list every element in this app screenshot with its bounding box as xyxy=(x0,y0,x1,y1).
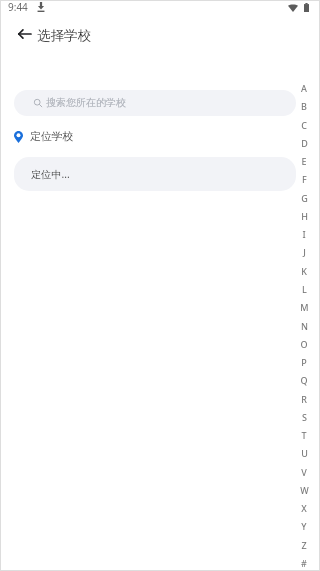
staticText: U xyxy=(301,447,308,459)
button[interactable]: H xyxy=(297,207,311,225)
button[interactable]: 定位中... xyxy=(14,157,296,191)
button[interactable]: Q xyxy=(297,371,311,389)
staticText: N xyxy=(301,320,308,332)
button[interactable]: G xyxy=(297,189,311,207)
button[interactable]: C xyxy=(297,116,311,134)
staticText: 定位中... xyxy=(31,167,70,181)
button[interactable]: Back xyxy=(16,26,32,42)
button[interactable]: O xyxy=(297,335,311,353)
button[interactable]: I xyxy=(297,225,311,243)
staticText: H xyxy=(301,210,308,222)
button[interactable]: E xyxy=(297,152,311,170)
button[interactable]: # xyxy=(297,554,311,571)
button[interactable]: B xyxy=(297,97,311,115)
staticText: D xyxy=(301,137,308,149)
staticText: S xyxy=(302,411,307,423)
staticText: L xyxy=(302,283,307,295)
staticText: I xyxy=(302,228,306,240)
button[interactable]: T xyxy=(297,426,311,444)
button[interactable]: M xyxy=(297,298,311,316)
staticText: # xyxy=(301,557,307,569)
button[interactable]: F xyxy=(297,170,311,188)
button[interactable]: D xyxy=(297,134,311,152)
staticText: C xyxy=(301,119,307,131)
button[interactable]: J xyxy=(297,243,311,261)
button[interactable]: L xyxy=(297,280,311,298)
staticText: P xyxy=(301,356,307,368)
staticText: E xyxy=(301,155,307,167)
staticText: V xyxy=(301,466,307,478)
button[interactable]: N xyxy=(297,317,311,335)
staticText: 9:44 xyxy=(8,0,28,14)
staticText: 搜索您所在的学校 xyxy=(46,96,126,109)
button[interactable]: W xyxy=(297,481,311,499)
staticText: W xyxy=(300,484,309,496)
button[interactable]: V xyxy=(297,463,311,481)
staticText: O xyxy=(300,338,308,350)
staticText: K xyxy=(301,265,307,277)
staticText: F xyxy=(302,173,307,185)
button[interactable]: Y xyxy=(297,517,311,535)
staticText: J xyxy=(303,246,306,258)
staticText: A xyxy=(301,82,307,94)
button[interactable]: Z xyxy=(297,536,311,554)
staticText: G xyxy=(301,192,308,204)
staticText: 选择学校 xyxy=(37,27,91,44)
staticText: Z xyxy=(301,539,307,551)
staticText: 定位学校 xyxy=(30,130,74,143)
button[interactable]: K xyxy=(297,262,311,280)
button[interactable]: U xyxy=(297,444,311,462)
button[interactable]: 搜索您所在的学校 xyxy=(14,90,296,116)
button[interactable]: X xyxy=(297,499,311,517)
staticText: Q xyxy=(300,374,308,386)
staticText: B xyxy=(301,100,307,112)
button[interactable]: A xyxy=(297,79,311,97)
staticText: X xyxy=(301,502,307,514)
button[interactable]: S xyxy=(297,408,311,426)
button[interactable]: P xyxy=(297,353,311,371)
button[interactable]: R xyxy=(297,390,311,408)
staticText: M xyxy=(300,301,309,313)
staticText: R xyxy=(301,393,307,405)
staticText: T xyxy=(301,429,307,441)
staticText: Y xyxy=(301,520,307,532)
